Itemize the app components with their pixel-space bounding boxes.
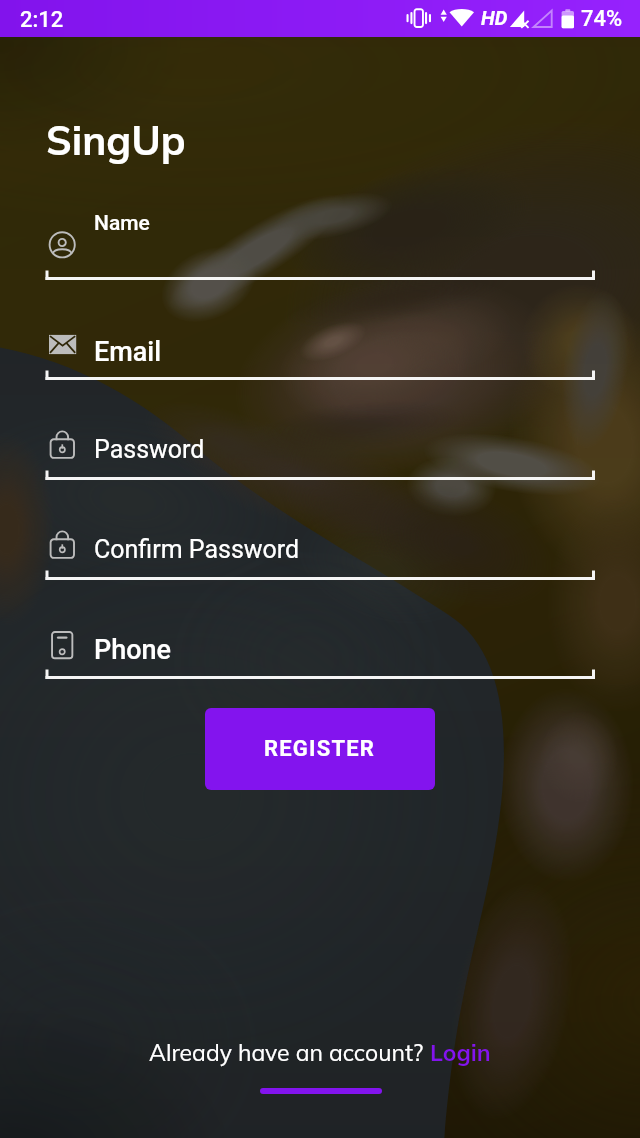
staticText: Password: [94, 435, 205, 464]
button[interactable]: Already have an account?: [0, 1038, 640, 1067]
button[interactable]: Phone: [0, 599, 640, 699]
staticText: Email: [94, 336, 162, 368]
staticText: Already have an account?: [149, 1038, 430, 1067]
staticText: Name: [94, 211, 150, 236]
button[interactable]: Name: [0, 200, 640, 300]
staticText: HD: [481, 6, 508, 29]
button[interactable]: Password: [0, 400, 640, 500]
button[interactable]: Email: [0, 300, 640, 400]
staticText: Login: [430, 1038, 491, 1067]
staticText: SingUp: [46, 115, 186, 165]
button[interactable]: Confirm Password: [0, 500, 640, 600]
staticText: REGISTER: [264, 736, 376, 762]
staticText: 74%: [581, 6, 623, 32]
staticText: Confirm Password: [94, 535, 300, 564]
staticText: Phone: [94, 634, 172, 666]
staticText: 2:12: [20, 7, 64, 33]
button[interactable]: REGISTER: [205, 708, 435, 790]
